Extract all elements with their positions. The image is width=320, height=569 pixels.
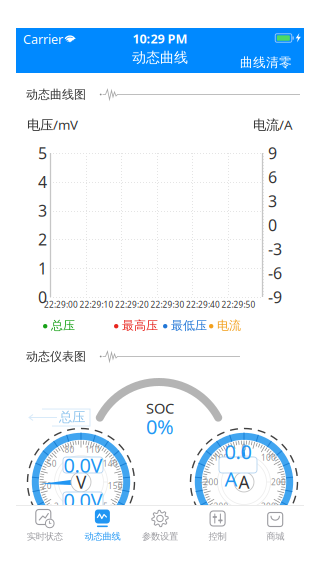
staticText: 50: [47, 458, 57, 469]
staticText: -100: [211, 452, 229, 463]
staticText: 150: [108, 480, 123, 491]
staticText: -3: [268, 238, 282, 260]
staticText: 200: [271, 476, 286, 488]
staticText: 参数设置: [142, 531, 178, 542]
staticText: 0.0A: [224, 438, 251, 492]
staticText: 控制: [209, 531, 227, 542]
staticText: 22:29:30: [150, 299, 184, 310]
button[interactable]: 动态曲线: [74, 506, 131, 544]
staticText: 80: [65, 444, 75, 455]
staticText: 6: [268, 166, 277, 188]
button[interactable]: 控制: [189, 506, 246, 544]
staticText: 5: [38, 142, 47, 164]
staticText: 22:29:20: [115, 299, 149, 310]
staticText: 0: [241, 442, 246, 453]
staticText: 0%: [146, 413, 174, 440]
staticText: A: [238, 470, 249, 494]
staticText: 动态曲线: [132, 49, 188, 66]
staticText: 0.0V: [63, 486, 102, 514]
staticText: V: [76, 470, 86, 494]
staticText: 0: [268, 214, 277, 236]
staticText: 1: [38, 257, 47, 279]
staticText: 0.0V: [63, 451, 102, 479]
staticText: Carrier: [23, 30, 63, 48]
staticText: 20: [42, 480, 52, 491]
staticText: 9: [268, 142, 277, 164]
staticText: 4: [38, 171, 47, 193]
staticText: 曲线清零: [240, 54, 292, 70]
staticText: 22:29:10: [79, 299, 113, 310]
staticText: 实时状态: [27, 531, 63, 542]
staticText: 动态曲线图: [26, 87, 86, 102]
staticText: 22:29:00: [44, 299, 78, 310]
staticText: -200: [200, 476, 218, 488]
staticText: 300: [261, 501, 276, 512]
staticText: -6: [268, 262, 282, 284]
staticText: 最高压: [122, 318, 158, 333]
staticText: 140: [103, 458, 118, 469]
staticText: 22:29:50: [221, 299, 255, 310]
button[interactable]: 实时状态: [16, 506, 74, 544]
staticText: 2: [38, 228, 47, 250]
staticText: 2: [54, 501, 59, 512]
staticText: 动态仪表图: [26, 349, 86, 364]
staticText: 商城: [266, 531, 284, 542]
staticText: 10:29 PM: [132, 30, 187, 47]
staticText: 3: [268, 190, 277, 212]
staticText: -300: [211, 501, 229, 512]
staticText: 100: [261, 452, 276, 463]
staticText: 最低压: [171, 318, 207, 333]
staticText: -9: [268, 286, 282, 308]
staticText: 总压: [51, 318, 75, 333]
staticText: 3: [38, 200, 47, 221]
staticText: 总压: [59, 409, 85, 425]
staticText: SOC: [146, 398, 174, 418]
staticText: 动态曲线: [84, 531, 120, 542]
staticText: 电流/A: [253, 115, 293, 134]
staticText: 0: [38, 286, 47, 308]
staticText: 电压/mV: [27, 115, 78, 134]
button[interactable]: 曲线清零: [236, 50, 296, 75]
staticText: 5: [103, 501, 108, 512]
button[interactable]: 参数设置: [131, 506, 189, 544]
staticText: 110: [85, 444, 100, 455]
staticText: 22:29:40: [186, 299, 220, 310]
button[interactable]: 商城: [246, 506, 304, 544]
staticText: 电流: [217, 318, 241, 333]
